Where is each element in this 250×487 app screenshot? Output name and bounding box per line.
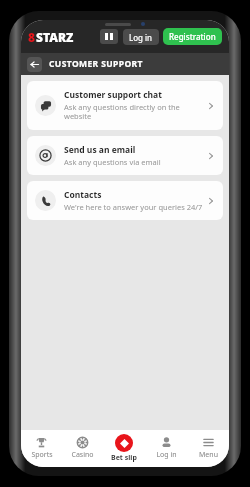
staticText: CUSTOMER SUPPORT xyxy=(49,58,143,70)
button[interactable]: Send us an email xyxy=(27,136,223,175)
staticText: 8 xyxy=(28,29,36,45)
button[interactable]: Back xyxy=(27,57,42,72)
staticText: Registration xyxy=(169,31,216,42)
button[interactable]: 8 xyxy=(28,26,74,48)
staticText: Bet slip xyxy=(111,453,137,463)
staticText: STARZ xyxy=(36,29,74,45)
button[interactable]: Customer support chat xyxy=(27,81,223,130)
staticText: Customer support chat xyxy=(64,89,162,101)
staticText: Sports xyxy=(31,450,53,460)
button[interactable]: Log in xyxy=(123,29,159,45)
staticText: Casino xyxy=(71,450,94,460)
button[interactable]: Pause xyxy=(100,29,118,44)
staticText: Log in xyxy=(129,32,153,43)
button[interactable]: Contacts xyxy=(27,181,223,220)
button[interactable]: Sports xyxy=(21,430,62,467)
button[interactable]: Bet slip xyxy=(103,430,145,467)
staticText: Send us an email xyxy=(64,144,136,156)
staticText: Ask any questions via email xyxy=(64,157,161,167)
button[interactable]: Menu xyxy=(187,430,229,467)
staticText: Contacts xyxy=(64,189,102,201)
staticText: Ask any questions directly on the websit… xyxy=(64,102,180,122)
staticText: We're here to answer your queries 24/7 xyxy=(64,202,203,212)
button[interactable]: Registration xyxy=(163,28,222,45)
staticText: Log in xyxy=(156,450,177,460)
button[interactable]: Log in xyxy=(145,430,187,467)
staticText: Menu xyxy=(199,450,218,460)
button[interactable]: Casino xyxy=(62,430,103,467)
